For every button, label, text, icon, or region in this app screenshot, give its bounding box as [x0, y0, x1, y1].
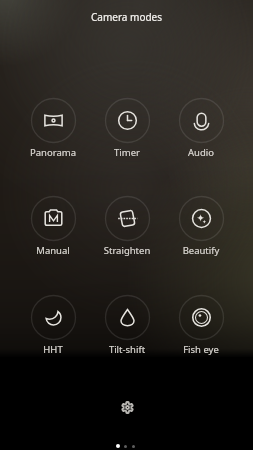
staticText: Audio: [164, 146, 238, 159]
staticText: Camera modes: [91, 10, 163, 24]
staticText: Beautify: [164, 244, 238, 257]
button[interactable]: Straighten: [90, 196, 164, 257]
button[interactable]: Settings: [113, 393, 141, 421]
button[interactable]: Manual: [16, 196, 90, 257]
button[interactable]: HHT: [16, 295, 90, 356]
staticText: Straighten: [90, 244, 164, 257]
staticText: Tilt-shift: [90, 343, 164, 356]
button[interactable]: Audio: [164, 98, 238, 159]
button[interactable]: Panorama: [16, 98, 90, 159]
staticText: Timer: [90, 146, 164, 159]
staticText: Manual: [16, 244, 90, 257]
staticText: Panorama: [16, 146, 90, 159]
button[interactable]: Tilt-shift: [90, 295, 164, 356]
staticText: Fish eye: [164, 343, 238, 356]
staticText: HHT: [16, 343, 90, 356]
button[interactable]: Fish eye: [164, 295, 238, 356]
button[interactable]: Beautify: [164, 196, 238, 257]
button[interactable]: Timer: [90, 98, 164, 159]
